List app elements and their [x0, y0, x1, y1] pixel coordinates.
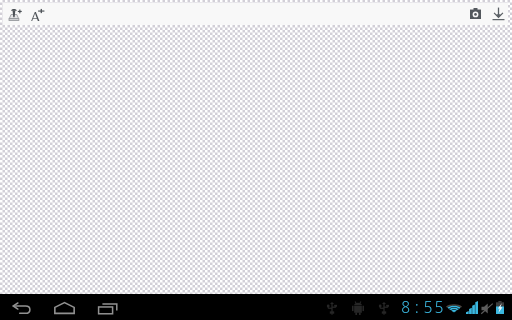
button[interactable]: Back — [13, 303, 31, 314]
button[interactable]: Add stamp — [9, 8, 22, 21]
button[interactable]: Save — [492, 7, 505, 21]
staticText: 8:55 — [401, 296, 446, 318]
button[interactable]: Camera — [470, 8, 481, 19]
staticText: A — [30, 6, 41, 21]
button[interactable]: Add text — [30, 6, 45, 21]
button[interactable]: Recents — [98, 303, 118, 314]
button[interactable]: Home — [54, 302, 75, 314]
